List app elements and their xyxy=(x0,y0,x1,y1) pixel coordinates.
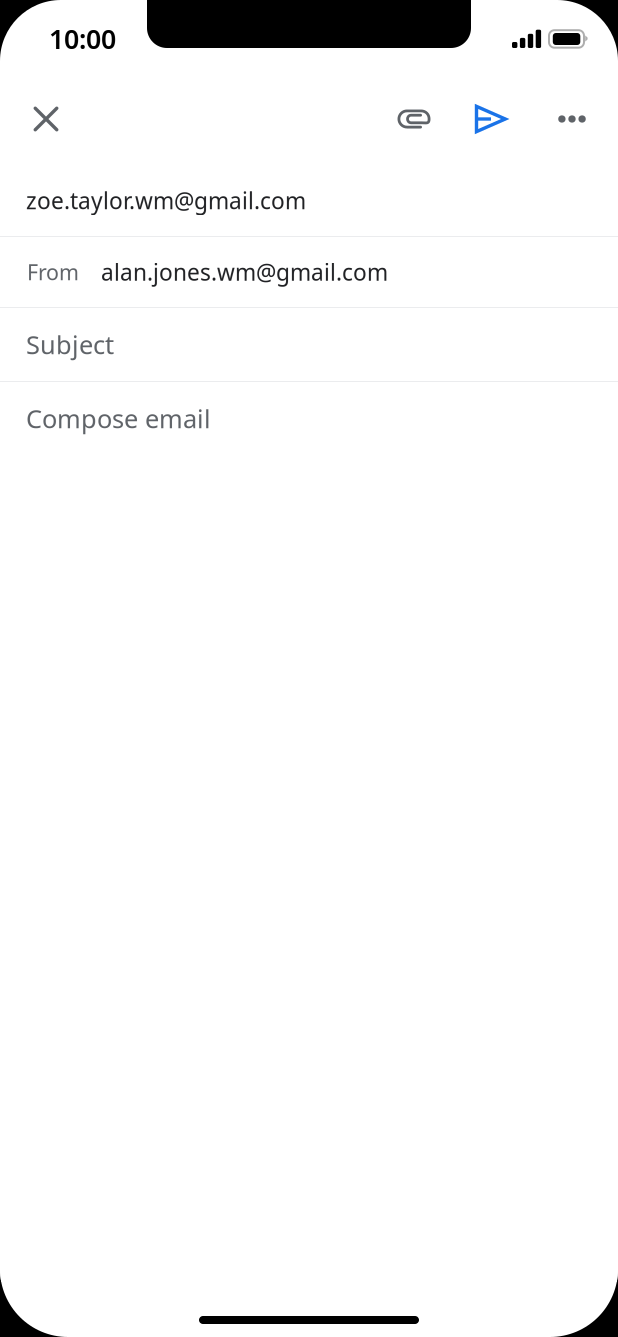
staticText: From xyxy=(27,258,79,286)
staticText: Subject xyxy=(26,328,114,361)
staticText: Compose email xyxy=(26,402,211,435)
button[interactable]: From xyxy=(0,237,618,307)
button[interactable]: Attach file xyxy=(387,92,441,146)
button[interactable]: More options xyxy=(545,92,599,146)
staticText: alan.jones.wm@gmail.com xyxy=(101,257,388,287)
staticText: zoe.taylor.wm@gmail.com xyxy=(26,185,306,215)
button[interactable]: Compose email xyxy=(0,382,618,1282)
button[interactable]: Subject xyxy=(0,308,618,381)
button[interactable]: zoe.taylor.wm@gmail.com xyxy=(0,164,618,237)
button[interactable]: Send xyxy=(464,92,518,146)
button[interactable]: Close xyxy=(19,92,73,146)
staticText: 10:00 xyxy=(49,21,116,56)
